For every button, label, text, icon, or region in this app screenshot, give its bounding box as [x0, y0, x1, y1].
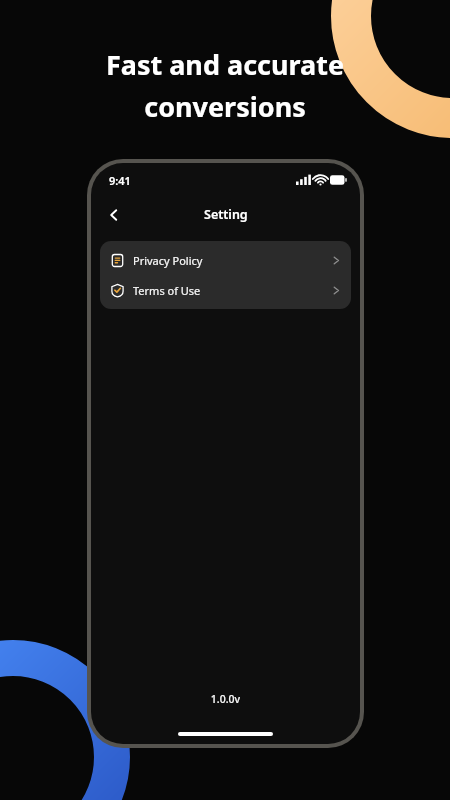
staticText: 9:41 [109, 173, 131, 188]
button[interactable]: Back [100, 201, 128, 229]
staticText: Privacy Policy [133, 253, 203, 268]
staticText: Setting [204, 206, 248, 223]
staticText: 1.0.0v [91, 692, 360, 706]
staticText: Fast and accurate conversions [18, 46, 432, 125]
staticText: Terms of Use [133, 283, 201, 298]
button[interactable]: Terms of Use [100, 275, 351, 305]
button[interactable]: Privacy Policy [100, 245, 351, 275]
